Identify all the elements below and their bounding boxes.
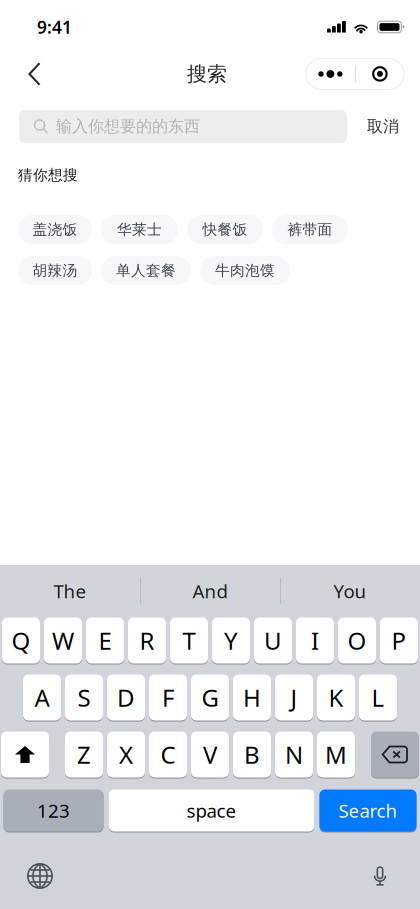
staticText: C xyxy=(160,739,175,770)
button[interactable]: You xyxy=(280,565,420,617)
button[interactable]: Next keyboard xyxy=(15,859,65,893)
button[interactable]: Dictate xyxy=(355,859,405,893)
staticText: X xyxy=(119,739,133,770)
button[interactable]: H xyxy=(233,674,271,721)
button[interactable]: C xyxy=(149,731,187,778)
button[interactable]: 盖浇饭 xyxy=(18,215,92,244)
button[interactable]: 取消 xyxy=(347,110,419,143)
button[interactable]: N xyxy=(275,731,313,778)
button[interactable]: Y xyxy=(212,617,250,664)
button[interactable]: space xyxy=(108,789,314,832)
button[interactable]: Search xyxy=(319,789,416,832)
button[interactable]: T xyxy=(170,617,208,664)
button[interactable]: Q xyxy=(2,617,40,664)
staticText: 输入你想要的的东西 xyxy=(56,117,200,136)
button[interactable]: F xyxy=(149,674,187,721)
button[interactable]: 快餐饭 xyxy=(187,215,263,244)
staticText: R xyxy=(139,625,154,656)
button[interactable]: Delete xyxy=(371,731,419,778)
button[interactable]: W xyxy=(44,617,82,664)
staticText: You xyxy=(333,579,366,603)
button[interactable]: S xyxy=(65,674,103,721)
button[interactable]: K xyxy=(317,674,355,721)
button[interactable]: P xyxy=(380,617,418,664)
staticText: K xyxy=(328,682,343,713)
button[interactable]: D xyxy=(107,674,145,721)
staticText: Q xyxy=(11,625,30,656)
staticText: L xyxy=(371,682,384,713)
staticText: 单人套餐 xyxy=(116,261,176,279)
staticText: S xyxy=(77,682,90,713)
staticText: 华莱士 xyxy=(117,220,162,238)
button[interactable]: 华莱士 xyxy=(101,215,178,244)
staticText: 9:41 xyxy=(37,15,72,38)
staticText: U xyxy=(264,625,282,656)
staticText: H xyxy=(243,682,261,713)
staticText: D xyxy=(117,682,135,713)
staticText: The xyxy=(53,579,86,603)
staticText: T xyxy=(182,625,195,656)
staticText: 快餐饭 xyxy=(202,220,247,238)
button[interactable]: L xyxy=(359,674,397,721)
button[interactable]: J xyxy=(275,674,313,721)
button[interactable]: M xyxy=(317,731,355,778)
staticText: E xyxy=(98,625,111,656)
button[interactable]: U xyxy=(254,617,292,664)
button[interactable]: And xyxy=(140,565,280,617)
button[interactable]: The xyxy=(0,565,140,617)
staticText: 猜你想搜 xyxy=(18,166,78,184)
button[interactable]: 输入你想要的的东西 xyxy=(19,110,347,143)
button[interactable]: 胡辣汤 xyxy=(18,256,92,285)
staticText: Search xyxy=(338,798,397,823)
staticText: G xyxy=(201,682,218,713)
staticText: Y xyxy=(224,625,238,656)
staticText: 胡辣汤 xyxy=(32,261,77,279)
button[interactable]: G xyxy=(191,674,229,721)
staticText: 盖浇饭 xyxy=(32,220,77,238)
button[interactable]: I xyxy=(296,617,334,664)
button[interactable]: 牛肉泡馍 xyxy=(200,256,290,285)
button[interactable]: X xyxy=(107,731,145,778)
button[interactable]: A xyxy=(23,674,61,721)
button[interactable]: B xyxy=(233,731,271,778)
staticText: 取消 xyxy=(367,117,399,136)
button[interactable]: Back xyxy=(15,52,54,96)
staticText: 123 xyxy=(37,798,70,823)
button[interactable]: More xyxy=(306,58,355,89)
staticText: N xyxy=(285,739,303,770)
button[interactable]: Target xyxy=(356,58,404,89)
staticText: J xyxy=(290,682,297,713)
button[interactable]: 裤带面 xyxy=(272,215,348,244)
button[interactable]: Z xyxy=(65,731,103,778)
staticText: space xyxy=(186,798,236,823)
staticText: P xyxy=(391,625,406,656)
button[interactable]: O xyxy=(338,617,376,664)
button[interactable]: 单人套餐 xyxy=(101,256,191,285)
staticText: I xyxy=(311,625,319,656)
staticText: W xyxy=(52,625,74,656)
staticText: 裤带面 xyxy=(287,220,332,238)
staticText: O xyxy=(347,625,366,656)
staticText: M xyxy=(325,739,347,770)
button[interactable]: E xyxy=(86,617,124,664)
button[interactable]: 123 xyxy=(3,789,103,832)
staticText: And xyxy=(192,579,227,603)
staticText: 搜索 xyxy=(187,62,227,86)
staticText: F xyxy=(162,682,174,713)
staticText: Z xyxy=(77,739,91,770)
staticText: V xyxy=(203,739,217,770)
staticText: B xyxy=(244,739,260,770)
staticText: A xyxy=(34,682,49,713)
staticText: 牛肉泡馍 xyxy=(215,261,275,279)
button[interactable]: R xyxy=(128,617,166,664)
button[interactable]: V xyxy=(191,731,229,778)
button[interactable]: Shift xyxy=(1,731,49,778)
